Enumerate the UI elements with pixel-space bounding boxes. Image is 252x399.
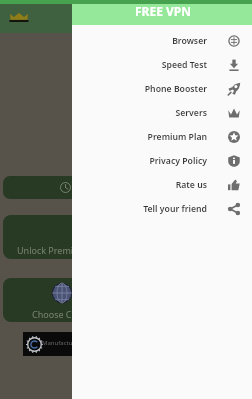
button[interactable]: Manufacturer: [23, 332, 153, 356]
staticText: Tell your friend: [143, 203, 207, 215]
button[interactable]: Servers: [72, 101, 252, 125]
staticText: Browser: [172, 35, 207, 47]
staticText: Servers: [175, 107, 207, 119]
button[interactable]: Phone Booster: [72, 77, 252, 101]
staticText: Speed Test: [161, 59, 207, 71]
button[interactable]: Choose Country: [3, 278, 249, 322]
staticText: Premium Plan: [147, 131, 207, 143]
button[interactable]: Premium: [4, 5, 32, 33]
staticText: Privacy Policy: [149, 155, 207, 167]
button[interactable]: Speed Test: [72, 53, 252, 77]
button[interactable]: Privacy Policy: [72, 149, 252, 173]
button[interactable]: Unlock Premium: [3, 215, 249, 259]
staticText: Unlock Premium: [17, 244, 88, 256]
button[interactable]: Rate us: [72, 173, 252, 197]
button[interactable]: Browser: [72, 29, 252, 53]
staticText: Manufacturer: [42, 339, 81, 347]
staticText: Choose Country: [32, 308, 100, 320]
button[interactable]: Tell your friend: [72, 197, 252, 221]
button[interactable]: Premium Plan: [72, 125, 252, 149]
staticText: Rate us: [175, 179, 207, 191]
staticText: FREE VPN: [135, 3, 192, 19]
staticText: Phone Booster: [144, 83, 207, 95]
button[interactable]: [3, 176, 249, 199]
